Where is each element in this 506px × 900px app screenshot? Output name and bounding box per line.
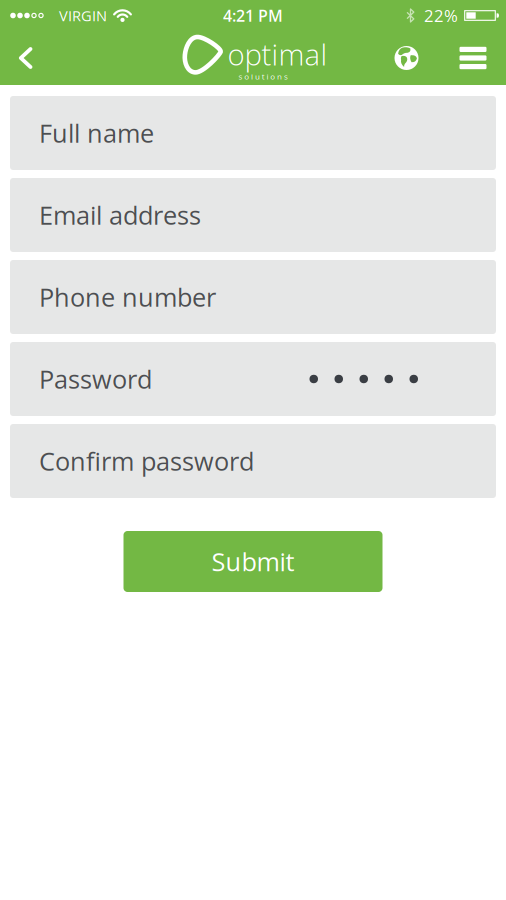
button[interactable]: Confirm password	[10, 424, 496, 498]
staticText: Email address	[39, 198, 201, 232]
staticText: Phone number	[39, 280, 216, 314]
button[interactable]: Email address	[10, 178, 496, 252]
staticText: 22%	[424, 4, 458, 27]
button[interactable]: Menu	[418, 31, 506, 85]
button[interactable]: Submit	[123, 531, 382, 592]
button[interactable]: Back	[0, 31, 48, 85]
staticText: optimal	[227, 34, 327, 74]
button[interactable]: Language	[394, 31, 418, 85]
button[interactable]: Full name	[10, 96, 496, 170]
staticText: solutions	[238, 71, 288, 82]
staticText: Submit	[211, 544, 294, 579]
button[interactable]: Password	[10, 342, 496, 416]
staticText: VIRGIN	[59, 5, 107, 25]
staticText: 4:21 PM	[223, 5, 283, 26]
staticText: Full name	[39, 116, 154, 150]
button[interactable]: Phone number	[10, 260, 496, 334]
staticText: Confirm password	[39, 444, 254, 478]
staticText: Password	[39, 362, 152, 396]
